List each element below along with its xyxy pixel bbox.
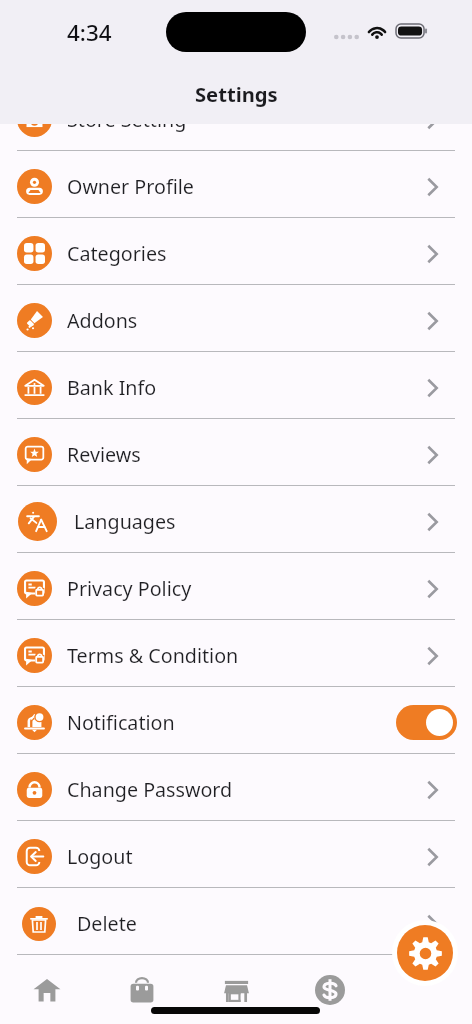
button[interactable]: Notification toggle <box>396 705 457 740</box>
button[interactable]: Wallet <box>297 966 363 1014</box>
staticText: Change Password <box>67 776 233 803</box>
staticText: Delete <box>77 910 137 937</box>
button[interactable]: Owner Profile <box>0 151 472 218</box>
staticText: Reviews <box>67 441 141 468</box>
staticText: Store Setting <box>67 106 187 133</box>
button[interactable]: Addons <box>0 285 472 352</box>
button[interactable]: Notification <box>0 687 472 754</box>
staticText: Languages <box>74 508 176 535</box>
staticText: Bank Info <box>67 374 157 401</box>
staticText: Privacy Policy <box>67 575 192 602</box>
staticText: Terms & Condition <box>67 642 239 669</box>
staticText: Logout <box>67 843 133 870</box>
staticText: Owner Profile <box>67 173 194 200</box>
button[interactable]: Bank Info <box>0 352 472 419</box>
staticText: 4:34 <box>67 17 112 48</box>
button[interactable]: Terms & Condition <box>0 620 472 687</box>
button[interactable]: Languages <box>0 486 472 553</box>
button[interactable]: Settings <box>392 920 458 986</box>
button[interactable]: Delete <box>0 888 472 955</box>
button[interactable]: Home <box>14 966 80 1014</box>
button[interactable]: Logout <box>0 821 472 888</box>
button[interactable]: Orders <box>109 966 175 1014</box>
button[interactable]: Categories <box>0 218 472 285</box>
button[interactable]: Change Password <box>0 754 472 821</box>
staticText: Notification <box>67 709 175 736</box>
button[interactable]: Privacy Policy <box>0 553 472 620</box>
staticText: Categories <box>67 240 167 267</box>
staticText: Addons <box>67 307 138 334</box>
button[interactable]: Reviews <box>0 419 472 486</box>
button[interactable]: Store Setting <box>0 84 472 151</box>
staticText: Settings <box>195 80 278 108</box>
button[interactable]: Store <box>203 966 269 1014</box>
